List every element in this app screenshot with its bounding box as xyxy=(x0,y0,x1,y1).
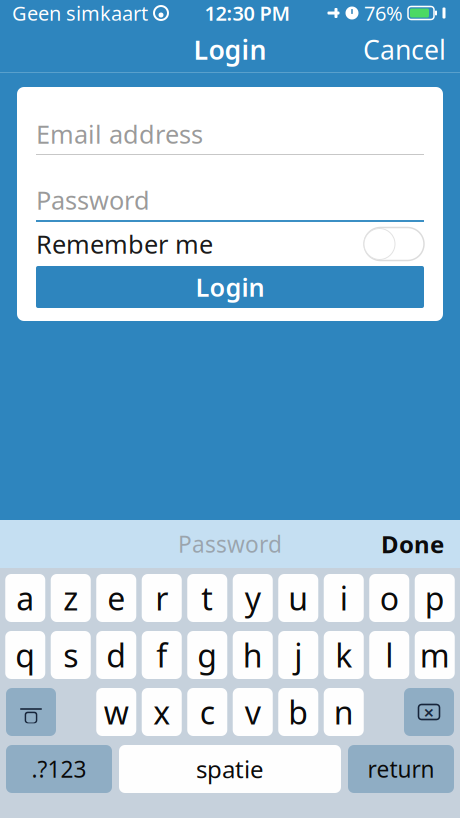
button[interactable]: g xyxy=(187,631,227,679)
staticText: Password xyxy=(36,183,150,217)
button[interactable]: i xyxy=(324,574,364,622)
button[interactable]: d xyxy=(96,631,136,679)
staticText: Login xyxy=(193,32,266,67)
staticText: Geen simkaart xyxy=(12,0,148,26)
staticText: j xyxy=(294,634,302,676)
staticText: s xyxy=(63,634,78,676)
button[interactable]: y xyxy=(233,574,273,622)
button[interactable]: s xyxy=(51,631,91,679)
staticText: d xyxy=(106,634,126,676)
button[interactable]: r xyxy=(142,574,182,622)
staticText: Remember me xyxy=(36,227,213,261)
staticText: Email address xyxy=(36,117,203,151)
button[interactable]: e xyxy=(96,574,136,622)
staticText: f xyxy=(156,634,167,676)
staticText: h xyxy=(243,634,263,676)
button[interactable]: v xyxy=(233,688,273,736)
button[interactable]: x xyxy=(142,688,182,736)
staticText: q xyxy=(15,634,35,676)
button[interactable]: p xyxy=(415,574,455,622)
staticText: Login xyxy=(195,270,264,304)
staticText: u xyxy=(288,577,308,619)
staticText: i xyxy=(340,577,348,619)
button[interactable]: return xyxy=(348,745,454,793)
button[interactable]: o xyxy=(369,574,409,622)
staticText: b xyxy=(288,691,308,733)
staticText: v xyxy=(245,691,261,733)
button[interactable]: a xyxy=(5,574,45,622)
button[interactable]: w xyxy=(96,688,136,736)
button[interactable]: h xyxy=(233,631,273,679)
button[interactable]: Shift xyxy=(6,688,56,736)
button[interactable]: c xyxy=(187,688,227,736)
staticText: return xyxy=(367,754,434,784)
staticText: o xyxy=(380,577,399,619)
staticText: Cancel xyxy=(363,32,446,67)
staticText: p xyxy=(425,577,445,619)
button[interactable]: b xyxy=(278,688,318,736)
staticText: n xyxy=(334,691,354,733)
staticText: r xyxy=(155,577,168,619)
staticText: x xyxy=(153,691,170,733)
button[interactable]: Cancel xyxy=(349,24,460,75)
staticText: 76% xyxy=(364,0,403,26)
staticText: l xyxy=(385,634,393,676)
button[interactable]: spatie xyxy=(119,745,341,793)
staticText: z xyxy=(63,577,78,619)
button[interactable]: z xyxy=(51,574,91,622)
button[interactable]: j xyxy=(278,631,318,679)
button[interactable]: k xyxy=(324,631,364,679)
button[interactable]: Done xyxy=(365,520,460,568)
button[interactable]: q xyxy=(5,631,45,679)
button[interactable]: n xyxy=(324,688,364,736)
staticText: Password xyxy=(178,529,282,559)
staticText: spatie xyxy=(196,753,264,785)
staticText: t xyxy=(201,577,213,619)
staticText: c xyxy=(200,691,215,733)
staticText: m xyxy=(420,634,450,676)
staticText: × xyxy=(423,700,434,724)
button[interactable]: l xyxy=(369,631,409,679)
button[interactable]: f xyxy=(142,631,182,679)
staticText: g xyxy=(197,634,217,676)
button[interactable]: Login xyxy=(36,266,424,308)
button[interactable]: u xyxy=(278,574,318,622)
button[interactable]: .?123 xyxy=(6,745,112,793)
staticText: k xyxy=(335,634,352,676)
button[interactable]: Delete xyxy=(404,688,454,736)
staticText: e xyxy=(107,577,125,619)
staticText: Done xyxy=(381,528,444,560)
staticText: .?123 xyxy=(31,754,86,784)
staticText: a xyxy=(16,577,34,619)
staticText: y xyxy=(245,577,261,619)
staticText: w xyxy=(104,691,129,733)
button[interactable]: m xyxy=(415,631,455,679)
button[interactable]: t xyxy=(187,574,227,622)
staticText: 12:30 PM xyxy=(204,0,290,26)
button[interactable]: Remember me xyxy=(36,222,424,266)
